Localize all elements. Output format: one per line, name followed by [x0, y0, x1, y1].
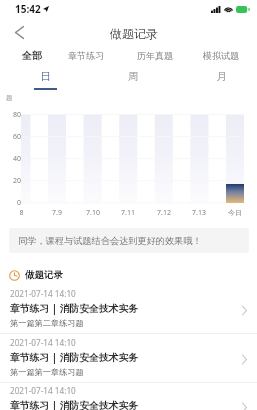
staticText: 全部 [22, 49, 42, 62]
staticText: 7.13 [192, 208, 206, 218]
staticText: 做题记录 [25, 269, 63, 281]
button[interactable]: Back [8, 21, 31, 44]
staticText: 日 [40, 70, 51, 83]
staticText: 同学，课程与试题结合会达到更好的效果哦！ [18, 235, 202, 247]
staticText: 20 [12, 176, 21, 186]
staticText: 7.11 [121, 208, 135, 218]
staticText: 周 [128, 70, 139, 83]
staticText: 60 [12, 132, 21, 142]
button[interactable]: 2021-07-14 14:10 [0, 383, 257, 410]
staticText: 0 [16, 198, 21, 208]
button[interactable]: 全部 [6, 47, 58, 63]
staticText: 题 [6, 94, 13, 102]
staticText: 2021-07-14 14:10 [10, 385, 76, 396]
staticText: 模拟试题 [203, 50, 239, 61]
staticText: 月 [216, 70, 227, 83]
button[interactable]: 同学，课程与试题结合会达到更好的效果哦！ [9, 228, 249, 253]
button[interactable]: 历年真题 [129, 47, 181, 63]
staticText: 章节练习 | 消防安全技术实务 [10, 399, 139, 410]
staticText: 15:42 [15, 2, 41, 16]
staticText: 2021-07-14 14:10 [10, 337, 76, 348]
button[interactable]: 2021-07-14 14:10 [0, 335, 257, 383]
staticText: 第一篇第二章练习题 [10, 318, 84, 328]
staticText: 80 [12, 110, 21, 120]
staticText: 8 [19, 208, 24, 218]
staticText: 40 [12, 154, 21, 164]
staticText: 第一篇第一章练习题 [10, 367, 84, 377]
button[interactable]: 章节练习 [60, 47, 112, 63]
staticText: 历年真题 [137, 50, 173, 61]
button[interactable]: 周 [113, 70, 153, 92]
staticText: 章节练习 | 消防安全技术实务 [10, 302, 139, 315]
staticText: 章节练习 [68, 50, 104, 61]
button[interactable]: 2021-07-14 14:10 [0, 286, 257, 334]
button[interactable]: 模拟试题 [195, 47, 247, 63]
staticText: 2021-07-14 14:10 [10, 288, 76, 299]
button[interactable]: 月 [201, 70, 241, 92]
staticText: 7.9 [52, 208, 62, 218]
staticText: 7.12 [157, 208, 171, 218]
staticText: 章节练习 | 消防安全技术实务 [10, 351, 139, 364]
staticText: 7.10 [86, 208, 100, 218]
button[interactable]: 日 [25, 70, 65, 92]
staticText: 今日 [228, 208, 242, 217]
staticText: 做题记录 [110, 26, 158, 41]
